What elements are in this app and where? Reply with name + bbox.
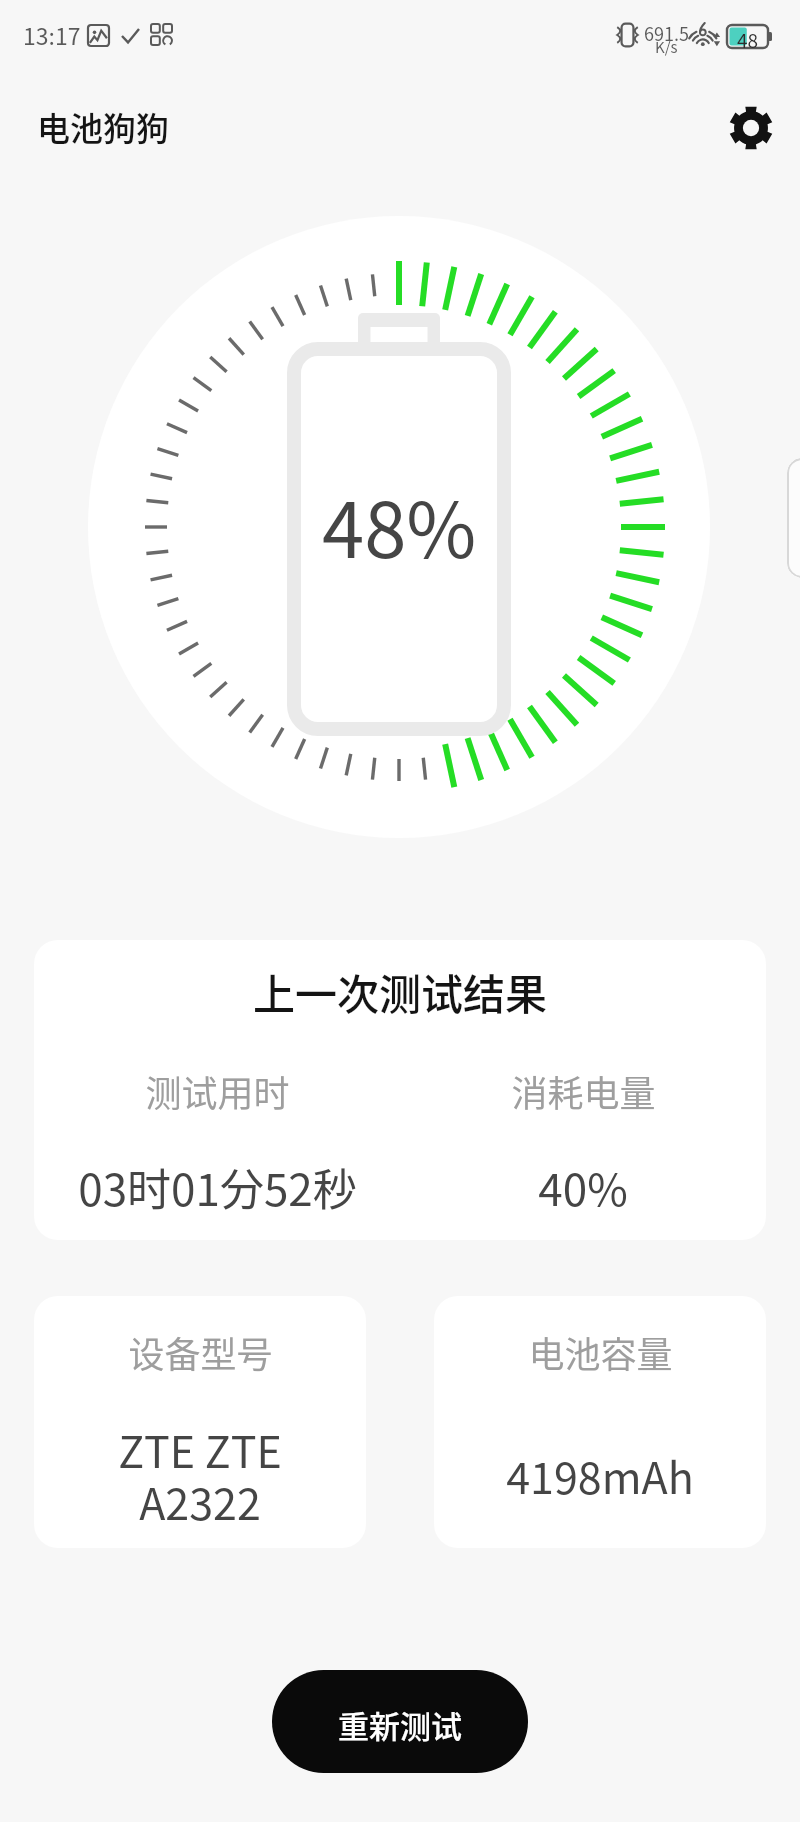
staticText: K/s bbox=[655, 36, 678, 58]
staticText: 40% bbox=[538, 1155, 628, 1219]
staticText: 691.5 bbox=[644, 20, 689, 46]
staticText: 电池狗狗 bbox=[37, 103, 169, 151]
button[interactable]: 设备型号 bbox=[34, 1296, 366, 1548]
staticText: 设备型号 bbox=[128, 1326, 273, 1378]
button[interactable]: Open side panel bbox=[787, 458, 800, 578]
staticText: 48% bbox=[322, 470, 477, 580]
button[interactable]: Settings bbox=[723, 100, 779, 156]
staticText: ZTE ZTE A2322 bbox=[118, 1418, 282, 1532]
staticText: 4198mAh bbox=[506, 1444, 694, 1506]
staticText: 电池容量 bbox=[528, 1326, 673, 1378]
button[interactable]: 重新测试 bbox=[272, 1670, 528, 1773]
button[interactable]: 电池容量 bbox=[434, 1296, 766, 1548]
staticText: 48 bbox=[737, 26, 759, 54]
staticText: 13:17 bbox=[23, 18, 81, 51]
staticText: 上一次测试结果 bbox=[253, 961, 548, 1022]
staticText: 重新测试 bbox=[338, 1702, 462, 1747]
button[interactable]: 上一次测试结果 bbox=[34, 940, 766, 1240]
staticText: 测试用时 bbox=[145, 1065, 290, 1117]
staticText: 消耗电量 bbox=[511, 1065, 656, 1117]
staticText: 03时01分52秒 bbox=[78, 1155, 357, 1219]
